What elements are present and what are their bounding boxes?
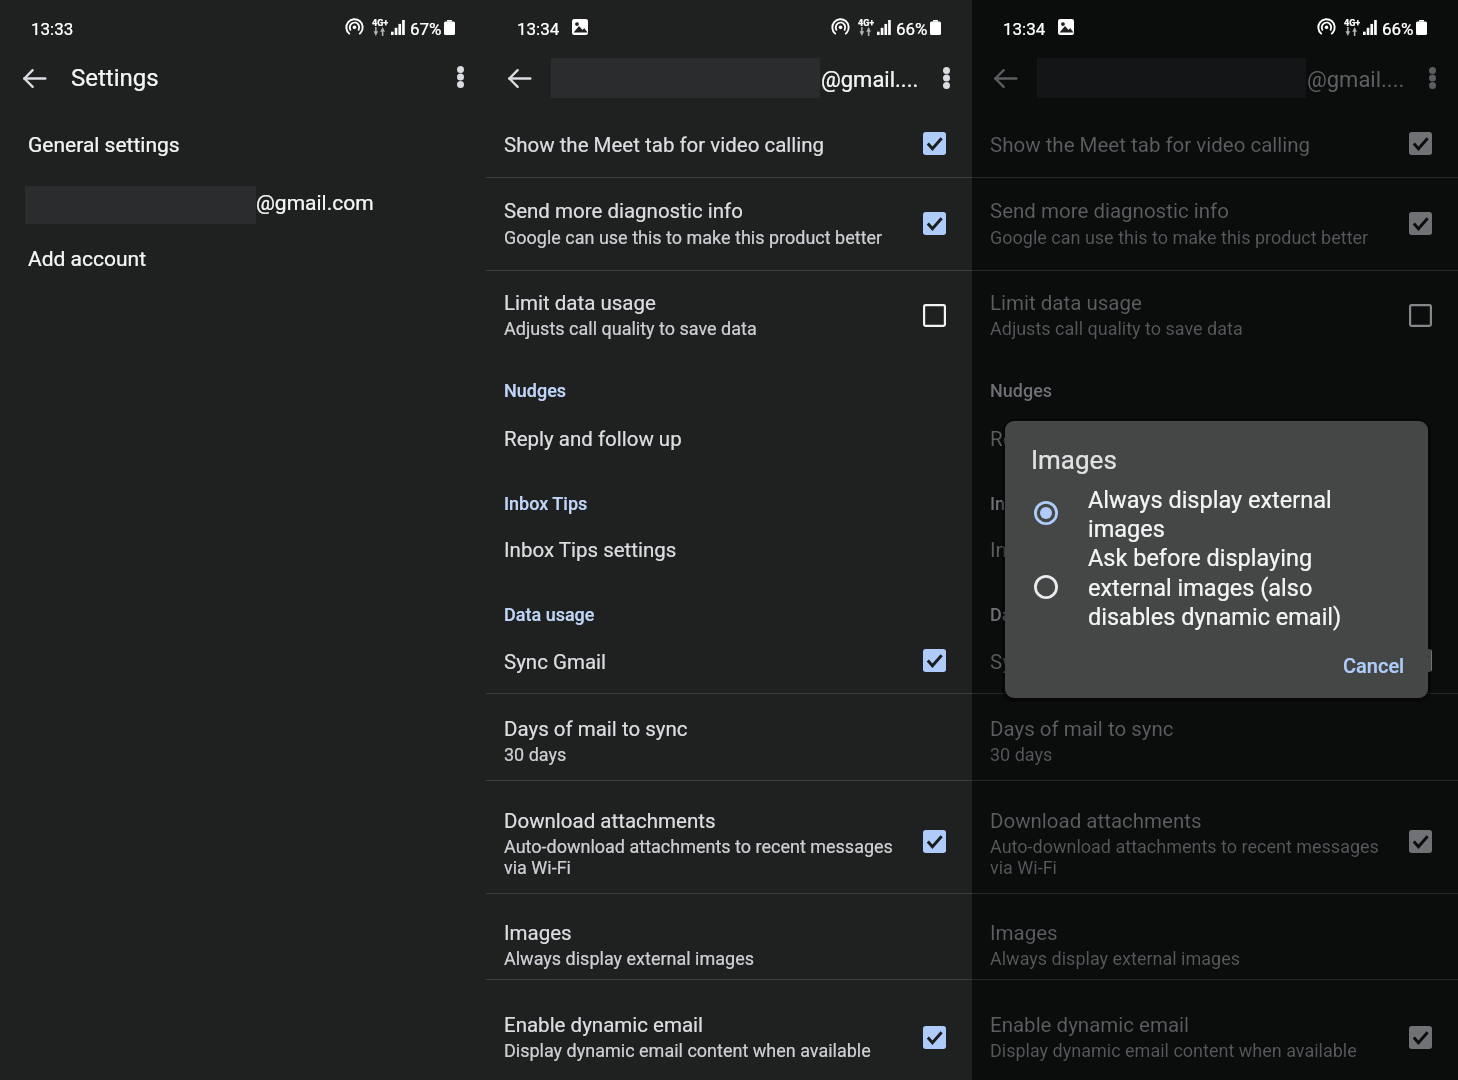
button[interactable]: Toggle Send more diagnostic info: [923, 212, 946, 235]
button[interactable]: [972, 365, 1458, 421]
staticText: Cancel: [1343, 654, 1405, 677]
staticText: disables dynamic email): [1088, 603, 1428, 631]
button[interactable]: [972, 781, 1458, 893]
staticText: Always display external: [1088, 486, 1418, 514]
staticText: @gmail....: [1307, 67, 1458, 93]
staticText: Show the Meet tab for video calling: [990, 133, 1390, 157]
button[interactable]: [1005, 545, 1428, 635]
staticText: images: [1088, 515, 1418, 543]
button[interactable]: Navigate up: [501, 60, 537, 96]
staticText: Inbox Tips: [504, 493, 804, 514]
staticText: Reply and follow up: [504, 427, 944, 451]
staticText: Display dynamic email content when avail…: [990, 1040, 1390, 1061]
staticText: via Wi-Fi: [990, 857, 1390, 878]
staticText: Adjusts call quality to save data: [504, 318, 904, 339]
button[interactable]: [972, 415, 1458, 475]
button[interactable]: [486, 589, 972, 645]
button[interactable]: Toggle Enable dynamic email: [923, 1026, 946, 1049]
button[interactable]: Toggle Show the Meet tab for video calli…: [923, 132, 946, 155]
staticText: Display dynamic email content when avail…: [504, 1040, 904, 1061]
button[interactable]: More options: [1410, 56, 1454, 100]
button[interactable]: [972, 980, 1458, 1080]
staticText: Limit data usage: [504, 291, 904, 315]
button[interactable]: [486, 980, 972, 1080]
staticText: Days of mail to sync: [504, 717, 944, 741]
staticText: Nudges: [990, 380, 1290, 401]
button[interactable]: [0, 238, 486, 280]
button[interactable]: [972, 639, 1458, 693]
button[interactable]: [0, 124, 486, 166]
staticText: General settings: [28, 133, 328, 158]
staticText: Data usage: [504, 604, 804, 625]
button[interactable]: Toggle Limit data usage: [923, 304, 946, 327]
staticText: Send more diagnostic info: [504, 199, 904, 223]
button[interactable]: Navigate up: [987, 60, 1023, 96]
button[interactable]: [972, 178, 1458, 270]
staticText: 66%: [896, 19, 956, 39]
button[interactable]: More options: [924, 56, 968, 100]
button[interactable]: [486, 178, 972, 270]
button[interactable]: [486, 415, 972, 475]
staticText: Nudges: [504, 380, 804, 401]
staticText: Days of mail to sync: [990, 717, 1430, 741]
button[interactable]: [972, 694, 1458, 780]
button[interactable]: [972, 113, 1458, 177]
button[interactable]: Toggle Send more diagnostic info: [1409, 212, 1432, 235]
staticText: 66%: [1382, 19, 1442, 39]
button[interactable]: Toggle Limit data usage: [1409, 304, 1432, 327]
staticText: 4G+: [1344, 18, 1384, 29]
button[interactable]: [486, 781, 972, 893]
button[interactable]: [486, 894, 972, 979]
button[interactable]: More options: [438, 55, 482, 99]
staticText: Enable dynamic email: [504, 1013, 904, 1037]
button[interactable]: [0, 182, 486, 228]
staticText: Show the Meet tab for video calling: [504, 133, 904, 157]
staticText: Always display external images: [990, 948, 1430, 969]
button[interactable]: [972, 271, 1458, 363]
staticText: Auto-download attachments to recent mess…: [504, 836, 904, 857]
staticText: Data usage: [990, 604, 1290, 625]
staticText: Inbox Tips settings: [504, 538, 944, 562]
button[interactable]: [972, 894, 1458, 979]
button[interactable]: [486, 113, 972, 177]
staticText: 13:33: [31, 19, 91, 39]
staticText: Download attachments: [504, 809, 904, 833]
button[interactable]: [972, 589, 1458, 645]
staticText: Auto-download attachments to recent mess…: [990, 836, 1390, 857]
staticText: Add account: [28, 247, 288, 272]
button[interactable]: [486, 477, 972, 533]
staticText: external images (also: [1088, 574, 1418, 602]
staticText: 30 days: [990, 744, 1430, 765]
staticText: Download attachments: [990, 809, 1390, 833]
button[interactable]: [486, 694, 972, 780]
staticText: Adjusts call quality to save data: [990, 318, 1390, 339]
staticText: Send more diagnostic info: [990, 199, 1390, 223]
staticText: Sync Gmail: [504, 650, 904, 674]
button[interactable]: Navigate up: [15, 59, 53, 97]
staticText: Images: [1031, 445, 1231, 475]
staticText: 4G+: [372, 18, 412, 29]
staticText: Images: [990, 921, 1430, 945]
staticText: 4G+: [858, 18, 898, 29]
button[interactable]: Toggle Download attachments: [1409, 830, 1432, 853]
button[interactable]: [972, 527, 1458, 587]
staticText: Always display external images: [504, 948, 944, 969]
button[interactable]: Cancel: [1333, 644, 1414, 686]
button[interactable]: [972, 477, 1458, 533]
button[interactable]: Toggle Enable dynamic email: [1409, 1026, 1432, 1049]
button[interactable]: [486, 271, 972, 363]
staticText: Images: [504, 921, 944, 945]
button[interactable]: [486, 639, 972, 693]
button[interactable]: [486, 527, 972, 587]
staticText: 13:34: [517, 19, 577, 39]
button[interactable]: Toggle Sync Gmail: [923, 649, 946, 672]
button[interactable]: Toggle Show the Meet tab for video calli…: [1409, 132, 1432, 155]
staticText: Ask before displaying: [1088, 544, 1418, 572]
staticText: via Wi-Fi: [504, 857, 904, 878]
button[interactable]: [1005, 483, 1428, 545]
staticText: 13:34: [1003, 19, 1063, 39]
button[interactable]: Toggle Download attachments: [923, 830, 946, 853]
staticText: Google can use this to make this product…: [504, 227, 904, 248]
button[interactable]: [486, 365, 972, 421]
button[interactable]: Toggle Sync Gmail: [1409, 649, 1432, 672]
